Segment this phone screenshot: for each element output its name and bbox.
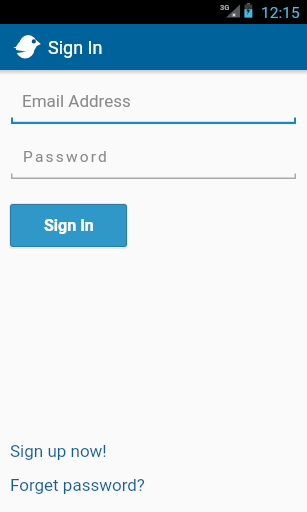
staticText: Sign In — [44, 216, 94, 235]
button[interactable]: Forget password? — [10, 475, 145, 495]
button[interactable]: Email Address — [11, 84, 296, 124]
staticText: 3G — [220, 3, 230, 12]
staticText: Sign In — [48, 37, 103, 58]
button[interactable]: Password — [11, 139, 296, 179]
staticText: Email Address — [22, 91, 131, 111]
staticText: Password — [23, 148, 110, 166]
button[interactable]: Sign In — [10, 204, 127, 247]
staticText: 12:15 — [261, 4, 300, 22]
button[interactable]: Sign up now! — [10, 441, 107, 461]
